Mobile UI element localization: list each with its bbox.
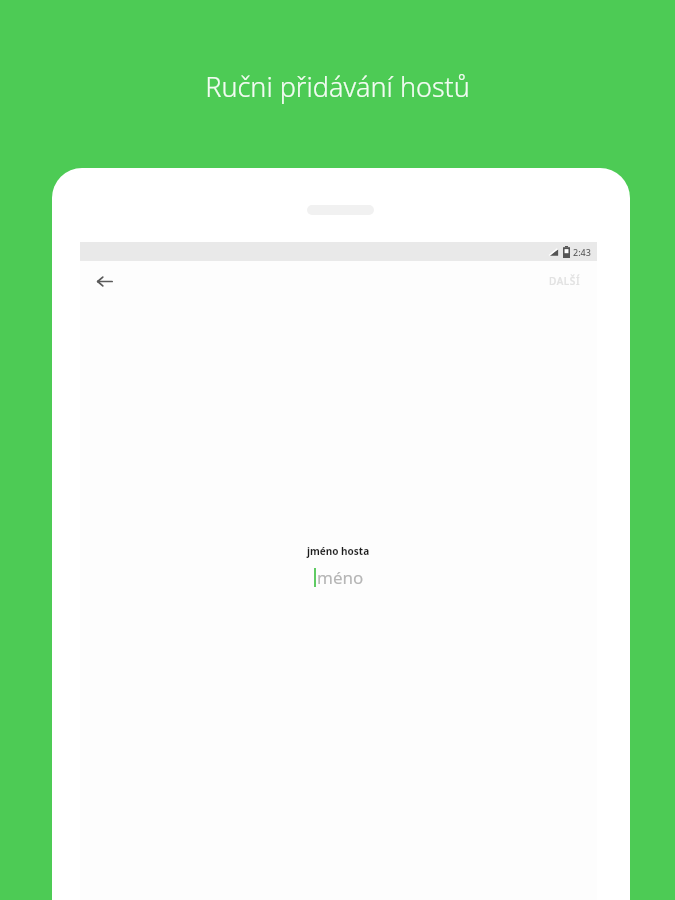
staticText: DALŠÍ xyxy=(549,274,581,288)
staticText: Ručni přidávání hostů xyxy=(0,68,675,105)
staticText: jméno hosta xyxy=(307,544,370,558)
button[interactable]: méno xyxy=(312,565,366,590)
button[interactable]: DALŠÍ xyxy=(545,270,585,292)
staticText: 2:43 xyxy=(573,246,591,258)
button[interactable]: Back xyxy=(91,268,117,294)
staticText: méno xyxy=(317,566,364,589)
